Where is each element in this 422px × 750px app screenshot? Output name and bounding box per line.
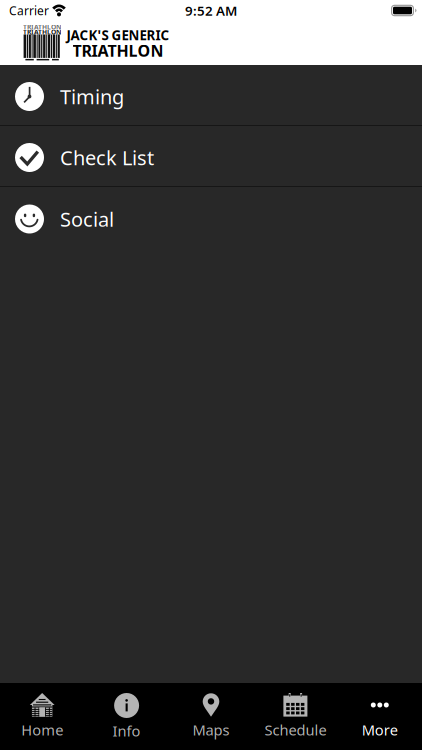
button[interactable]: Schedule: [253, 683, 338, 750]
staticText: TRIATHLON: [72, 40, 163, 61]
staticText: 9:52 AM: [185, 2, 237, 19]
staticText: TRIATHLON: [23, 23, 61, 31]
staticText: JACK'S GENERIC: [66, 26, 169, 44]
staticText: Schedule: [264, 720, 326, 739]
button[interactable]: Timing: [0, 65, 422, 126]
staticText: Check List: [60, 144, 154, 171]
staticText: Home: [21, 720, 63, 739]
button[interactable]: More: [338, 683, 422, 750]
button[interactable]: Check List: [0, 126, 422, 187]
staticText: TRIATHLON: [23, 28, 61, 36]
staticText: Social: [60, 206, 114, 232]
staticText: Maps: [192, 720, 229, 739]
button[interactable]: Social: [0, 187, 422, 248]
button[interactable]: Info: [84, 683, 169, 750]
button[interactable]: Home: [0, 683, 84, 750]
staticText: More: [362, 720, 398, 739]
button[interactable]: Maps: [169, 683, 253, 750]
staticText: Timing: [60, 83, 124, 110]
staticText: Info: [113, 721, 141, 740]
staticText: Carrier: [9, 2, 49, 18]
